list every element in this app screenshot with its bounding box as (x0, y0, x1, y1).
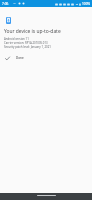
button[interactable]: Done (0, 53, 92, 63)
staticText: Android version 11 (4, 37, 29, 41)
staticText: 100% (82, 2, 91, 6)
staticText: 7:06 (2, 2, 9, 6)
staticText: Your device is up-to-date (4, 28, 61, 35)
staticText: Security patch level: January 1, 2021 (4, 45, 51, 49)
staticText: Done (16, 56, 24, 60)
staticText: Carrier version: RP1A.201005.013 (4, 41, 48, 45)
